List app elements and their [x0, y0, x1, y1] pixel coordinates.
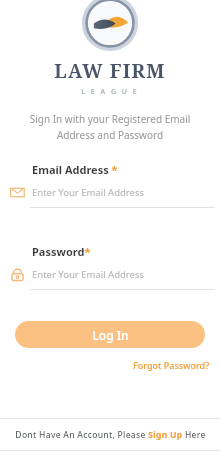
staticText: L E A G U E [81, 87, 139, 97]
staticText: LAW FIRM [54, 58, 166, 84]
staticText: Password* [32, 244, 91, 259]
staticText: Forgot Password? [133, 359, 210, 371]
other: Email [10, 185, 25, 200]
staticText: Dont Have An Account, Please Sign Up Her… [15, 429, 206, 441]
other: Password [10, 267, 25, 282]
button[interactable]: Password [10, 267, 214, 282]
staticText: Email Address * [32, 162, 118, 177]
button[interactable]: Email [10, 185, 214, 200]
button[interactable]: Forgot Password? [131, 357, 212, 373]
staticText: Enter Your Email Address [32, 268, 145, 281]
staticText: Enter Your Email Address [32, 186, 145, 199]
staticText: Sign In with your Registered Email Addre… [16, 112, 204, 141]
button[interactable]: Dont Have An Account, Please Sign Up Her… [0, 419, 220, 450]
staticText: Log In [92, 327, 129, 343]
button[interactable]: Log In [15, 321, 205, 348]
